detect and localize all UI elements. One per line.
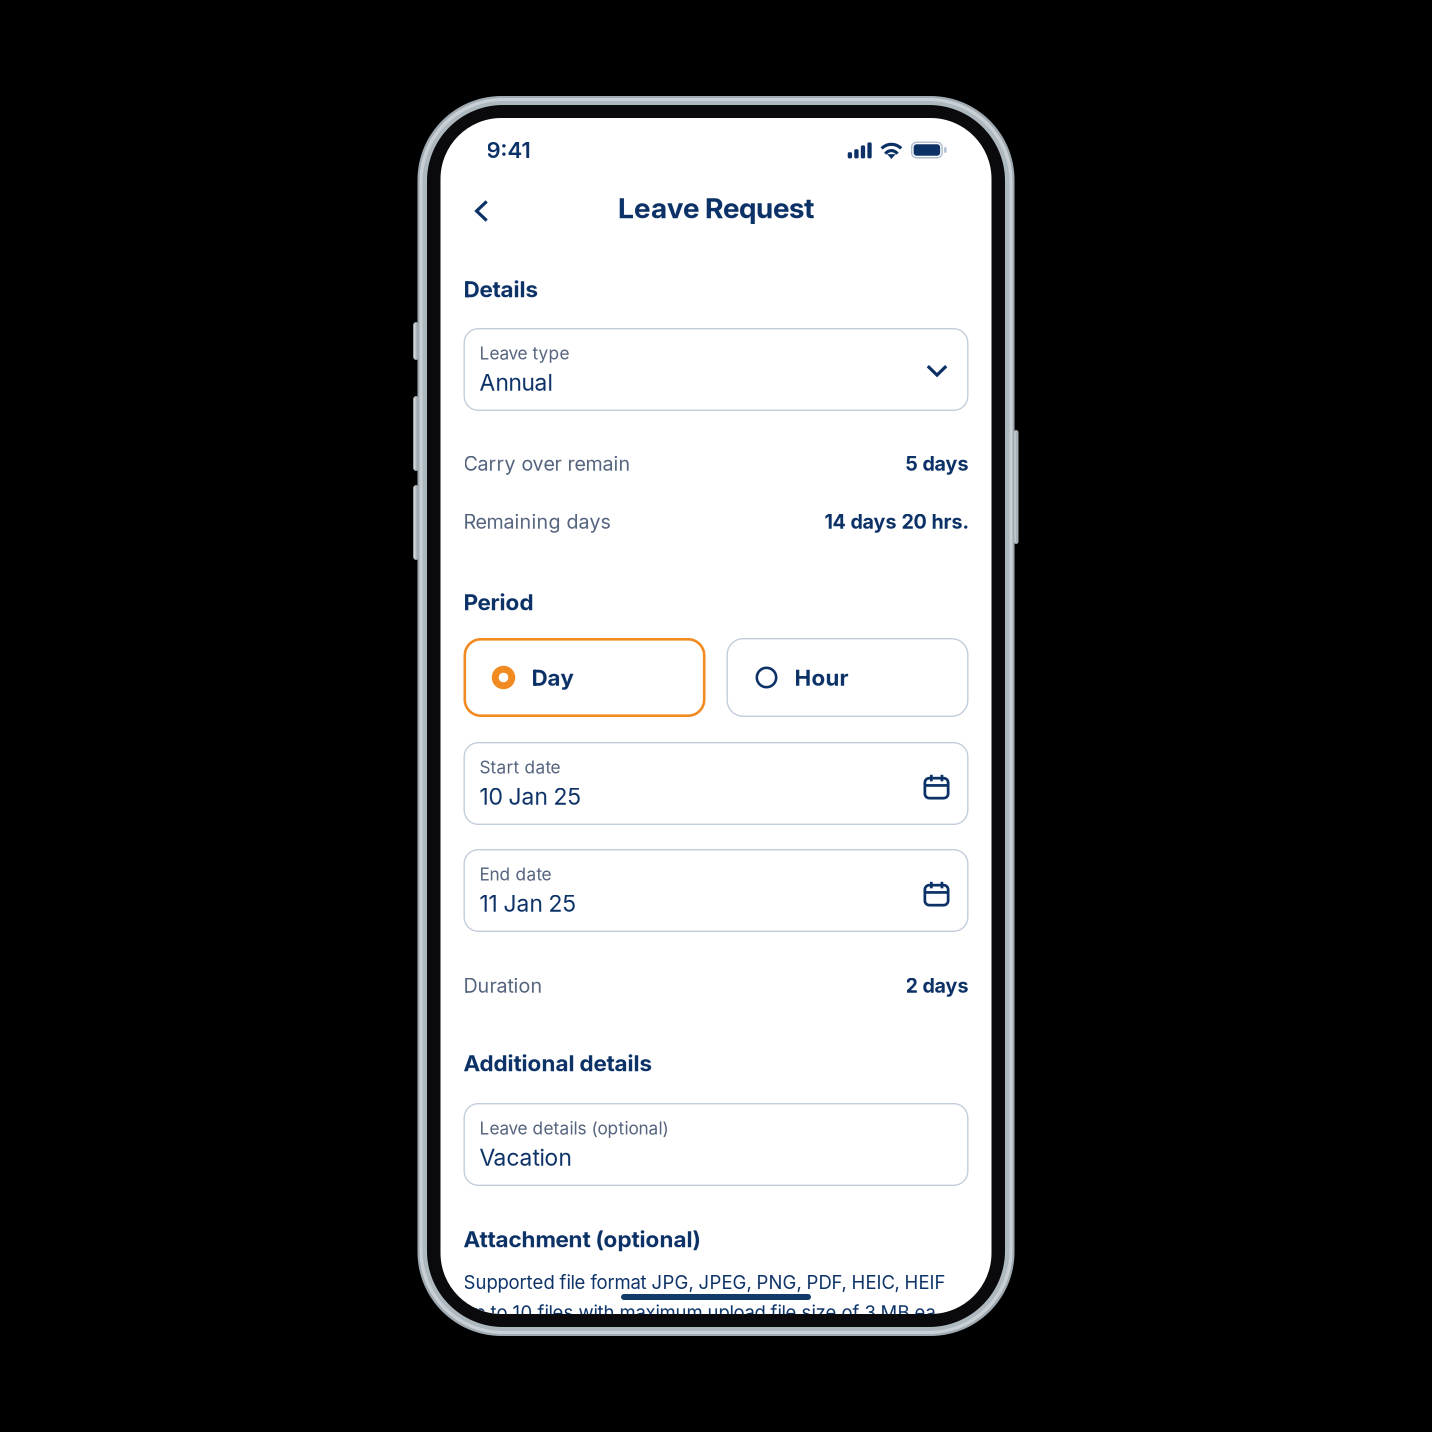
staticText: 2 days	[905, 974, 968, 997]
button[interactable]: Day	[463, 638, 705, 717]
staticText: 9:41	[486, 137, 530, 163]
staticText: Carry over remain	[463, 452, 630, 475]
staticText: Supported file format JPG, JPEG, PNG, PD…	[463, 1271, 945, 1324]
button[interactable]: Back	[456, 183, 506, 233]
staticText: Leave type	[479, 343, 569, 363]
staticText: Leave Request	[618, 191, 814, 225]
staticText: 14 days 20 hrs.	[824, 510, 968, 533]
staticText: Details	[463, 275, 537, 303]
staticText: End date	[479, 864, 551, 884]
staticText: Period	[463, 588, 533, 616]
button[interactable]: Leave type	[463, 328, 968, 411]
staticText: Hour	[794, 664, 848, 691]
button[interactable]: Hour	[726, 638, 968, 717]
staticText: Additional details	[463, 1049, 651, 1077]
staticText: 5 days	[905, 452, 968, 475]
staticText: Annual	[479, 368, 552, 396]
staticText: Vacation	[479, 1143, 571, 1171]
button[interactable]: End date	[463, 849, 968, 932]
button[interactable]: Start date	[463, 742, 968, 825]
button[interactable]: Leave details (optional)	[463, 1103, 968, 1186]
staticText: 11 Jan 25	[479, 889, 576, 917]
staticText: Remaining days	[463, 510, 610, 533]
staticText: Attachment (optional)	[463, 1225, 700, 1253]
staticText: Duration	[463, 974, 542, 997]
staticText: 10 Jan 25	[479, 782, 581, 810]
staticText: Day	[531, 664, 573, 691]
staticText: Start date	[479, 757, 560, 777]
staticText: Leave details (optional)	[479, 1118, 668, 1138]
